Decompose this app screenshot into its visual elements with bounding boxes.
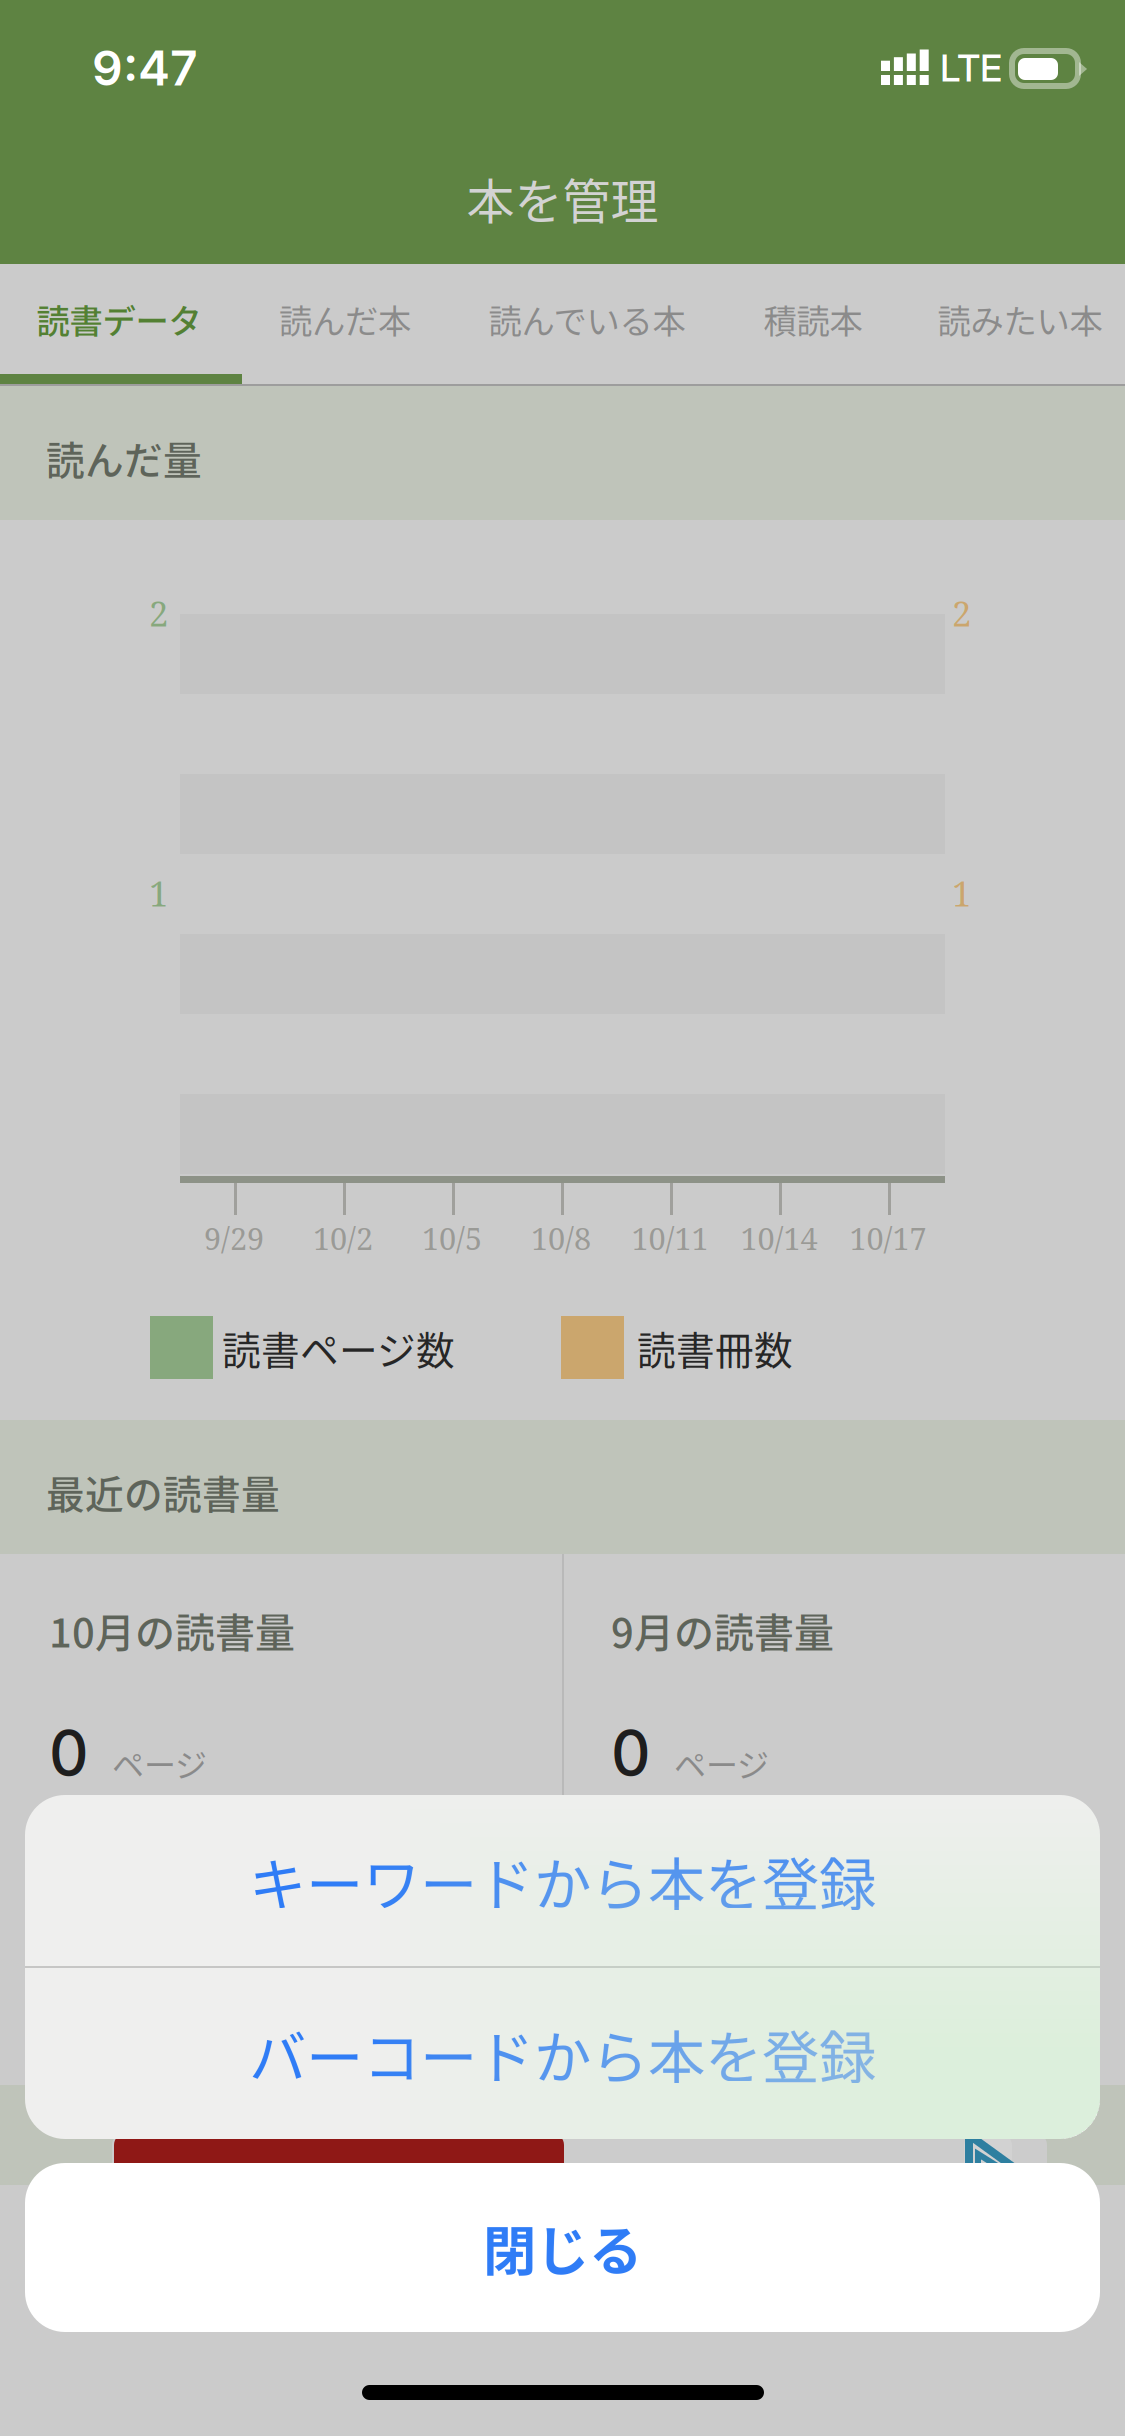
staticText: 0 bbox=[611, 1716, 651, 1790]
staticText: 9/29 bbox=[204, 1217, 264, 1259]
staticText: 読んでいる本 bbox=[488, 295, 685, 343]
staticText: 閉じる bbox=[483, 2209, 642, 2286]
staticText: 2 bbox=[952, 589, 971, 637]
staticText: 10月の読書量 bbox=[49, 1601, 295, 1659]
staticText: 10/8 bbox=[531, 1217, 591, 1259]
staticText: 積読本 bbox=[763, 295, 862, 343]
staticText: 本を管理 bbox=[466, 163, 658, 233]
staticText: 2 bbox=[149, 589, 168, 637]
button[interactable]: キーワードから本を登録 bbox=[25, 1795, 1100, 1966]
staticText: 読書データ bbox=[36, 295, 201, 343]
staticText: 1 bbox=[149, 869, 168, 917]
staticText: 読んだ本 bbox=[279, 295, 411, 343]
button[interactable]: バーコードから本を登録 bbox=[25, 1968, 1100, 2139]
staticText: 9月の読書量 bbox=[611, 1601, 834, 1659]
button[interactable]: 積読本 bbox=[713, 264, 913, 374]
staticText: 10/11 bbox=[631, 1217, 708, 1259]
button[interactable]: 読書データ bbox=[0, 264, 240, 374]
staticText: ページ bbox=[674, 1740, 769, 1786]
staticText: 読書ページ数 bbox=[222, 1320, 455, 1376]
staticText: 読みたい本 bbox=[937, 295, 1102, 343]
staticText: 読んだ量 bbox=[46, 430, 202, 486]
staticText: 1 bbox=[952, 869, 971, 917]
button[interactable]: 読みたい本 bbox=[920, 264, 1120, 374]
button[interactable]: 読んでいる本 bbox=[487, 264, 687, 374]
staticText: 0 bbox=[49, 1716, 89, 1790]
staticText: 9:47 bbox=[92, 39, 198, 97]
staticText: 読書冊数 bbox=[637, 1320, 793, 1376]
staticText: ページ bbox=[112, 1740, 207, 1786]
staticText: 10/5 bbox=[422, 1217, 482, 1259]
staticText: LTE bbox=[940, 45, 1002, 91]
button[interactable]: 読んだ本 bbox=[245, 264, 445, 374]
button[interactable]: 閉じる bbox=[25, 2163, 1100, 2332]
staticText: 最近の読書量 bbox=[46, 1464, 280, 1520]
staticText: 10/17 bbox=[849, 1217, 926, 1259]
staticText: キーワードから本を登録 bbox=[249, 1839, 876, 1922]
staticText: 10/2 bbox=[313, 1217, 373, 1259]
staticText: バーコードから本を登録 bbox=[249, 2012, 876, 2095]
staticText: 10/14 bbox=[740, 1217, 817, 1259]
